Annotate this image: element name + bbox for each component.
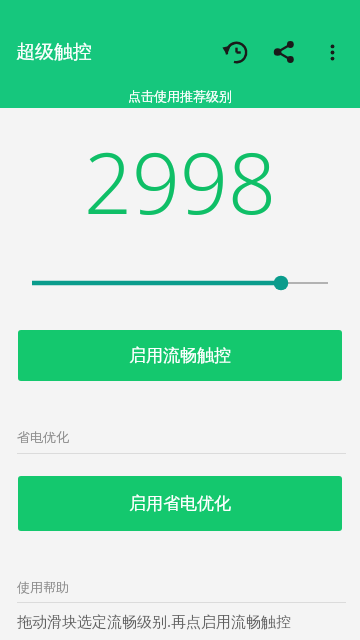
button[interactable]: Level slider bbox=[0, 265, 360, 301]
button[interactable]: 启用流畅触控 bbox=[18, 330, 342, 381]
staticText: 使用帮助 bbox=[17, 579, 69, 595]
button[interactable]: History bbox=[212, 28, 260, 76]
staticText: 启用流畅触控 bbox=[129, 345, 231, 366]
button[interactable]: More options bbox=[308, 28, 356, 76]
staticText: 启用省电优化 bbox=[129, 493, 231, 514]
staticText: 超级触控 bbox=[16, 40, 92, 64]
staticText: 2998 bbox=[84, 124, 276, 224]
button[interactable]: Share bbox=[260, 28, 308, 76]
staticText: 省电优化 bbox=[17, 429, 69, 445]
staticText: 拖动滑块选定流畅级别.再点启用流畅触控 bbox=[17, 611, 292, 631]
button[interactable]: 启用省电优化 bbox=[18, 476, 342, 531]
staticText: 点击使用推荐级别 bbox=[128, 88, 232, 104]
